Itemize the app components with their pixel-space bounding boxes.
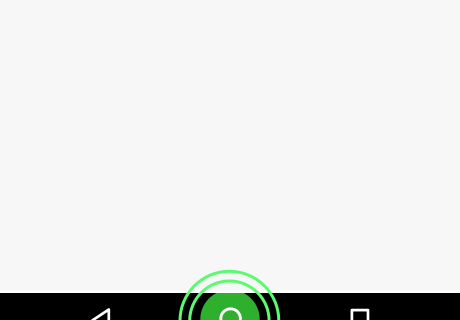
button[interactable]: Listen bbox=[0, 0, 460, 320]
button[interactable]: Recents bbox=[0, 0, 460, 320]
button[interactable]: Back bbox=[0, 0, 460, 320]
